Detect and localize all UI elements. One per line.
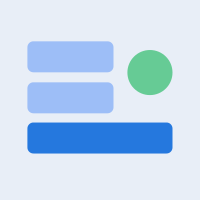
button[interactable]: Status xyxy=(127,50,172,95)
button[interactable]: Primary action xyxy=(27,122,172,153)
button[interactable]: Second content block xyxy=(27,82,113,113)
button[interactable]: First content block xyxy=(27,41,113,72)
